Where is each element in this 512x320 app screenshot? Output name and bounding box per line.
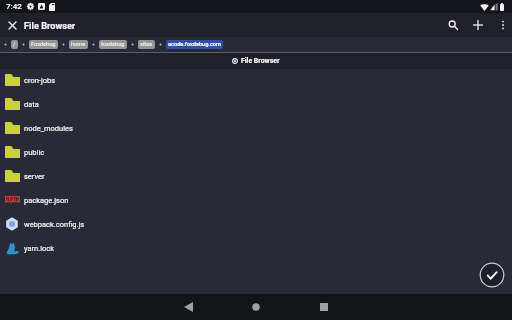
staticText: webpack.config.js — [24, 220, 85, 229]
staticText: server — [24, 172, 45, 181]
button[interactable]: server — [0, 164, 512, 188]
staticText: Foxdebug — [31, 41, 56, 48]
button[interactable]: cron-jobs — [0, 68, 512, 92]
button[interactable]: foxdebug — [99, 40, 127, 49]
button[interactable]: sites — [138, 40, 155, 49]
button[interactable]: File Browser — [0, 53, 512, 69]
staticText: home — [71, 41, 86, 48]
staticText: cron-jobs — [24, 76, 56, 85]
staticText: public — [24, 148, 45, 157]
button[interactable]: webpack.config.js — [0, 212, 512, 236]
button[interactable]: data — [0, 92, 512, 116]
staticText: foxdebug — [101, 41, 125, 48]
button[interactable]: Add — [469, 16, 487, 34]
staticText: File Browser — [24, 20, 76, 31]
button[interactable]: home — [69, 40, 88, 49]
button[interactable]: Confirm — [479, 262, 505, 288]
button[interactable]: / — [11, 40, 18, 49]
staticText: / — [13, 41, 16, 48]
button[interactable]: public — [0, 140, 512, 164]
staticText: 7:42 — [6, 2, 22, 11]
button[interactable]: node_modules — [0, 116, 512, 140]
staticText: sites — [140, 41, 153, 48]
button[interactable]: Search — [444, 16, 462, 34]
button[interactable]: yarn.lock — [0, 236, 512, 260]
staticText: acode.foxdebug.com — [168, 41, 221, 48]
button[interactable]: Recents — [290, 294, 358, 320]
button[interactable]: acode.foxdebug.com — [166, 40, 223, 49]
button[interactable]: Home — [222, 294, 290, 320]
staticText: node_modules — [24, 124, 73, 133]
button[interactable]: Close — [0, 13, 24, 37]
button[interactable]: More options — [494, 16, 512, 34]
staticText: package.json — [24, 196, 69, 205]
staticText: File Browser — [241, 57, 280, 65]
staticText: data — [24, 100, 39, 109]
button[interactable]: Back — [154, 294, 222, 320]
button[interactable]: Foxdebug — [29, 40, 58, 49]
staticText: yarn.lock — [24, 244, 55, 253]
button[interactable]: package.json — [0, 188, 512, 212]
